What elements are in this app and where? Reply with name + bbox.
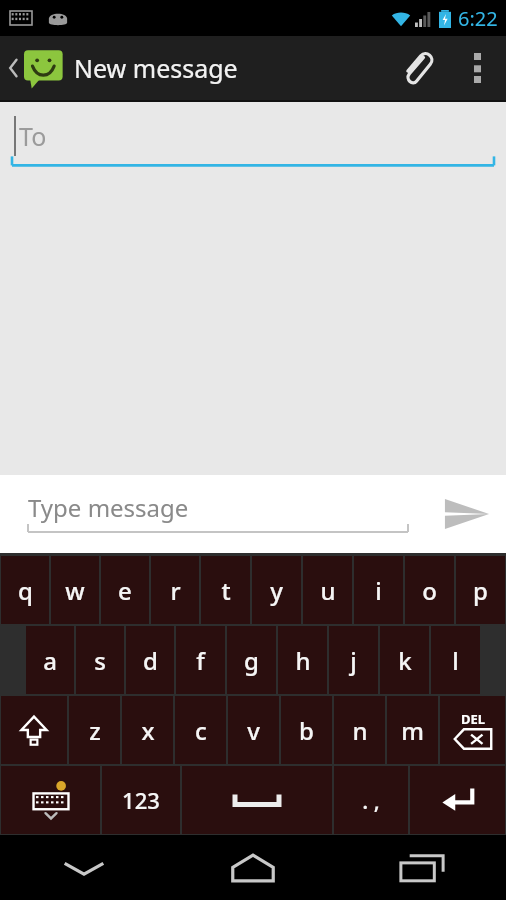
button[interactable]: i: [354, 556, 403, 624]
staticText: DEL: [461, 710, 486, 728]
staticText: k: [398, 644, 412, 677]
button[interactable]: Attach: [384, 36, 448, 100]
staticText: u: [320, 574, 336, 607]
staticText: Type message: [28, 491, 189, 524]
staticText: h: [295, 644, 311, 677]
staticText: To: [19, 119, 47, 153]
staticText: z: [89, 714, 101, 747]
button[interactable]: u: [303, 556, 352, 624]
staticText: n: [352, 714, 368, 747]
staticText: c: [195, 714, 207, 747]
staticText: b: [299, 714, 314, 747]
staticText: New message: [74, 51, 238, 85]
staticText: v: [247, 714, 260, 747]
button[interactable]: g: [227, 626, 276, 694]
button[interactable]: Space: [182, 766, 332, 834]
button[interactable]: s: [76, 626, 124, 694]
button[interactable]: t: [201, 556, 250, 624]
button[interactable]: b: [281, 696, 332, 764]
button[interactable]: n: [334, 696, 385, 764]
staticText: a: [43, 644, 57, 677]
button[interactable]: z: [69, 696, 120, 764]
button[interactable]: Shift: [1, 696, 67, 764]
button[interactable]: v: [228, 696, 279, 764]
button[interactable]: c: [175, 696, 226, 764]
staticText: x: [141, 714, 155, 747]
staticText: j: [350, 644, 357, 677]
button[interactable]: o: [405, 556, 454, 624]
staticText: o: [422, 574, 437, 607]
button[interactable]: 123: [102, 766, 180, 834]
button[interactable]: r: [151, 556, 199, 624]
staticText: g: [244, 644, 259, 677]
button[interactable]: Home: [168, 835, 337, 900]
staticText: t: [221, 574, 231, 607]
button[interactable]: Send: [428, 475, 506, 553]
button[interactable]: w: [51, 556, 99, 624]
staticText: w: [65, 574, 85, 607]
staticText: q: [18, 574, 33, 607]
button[interactable]: . ,: [334, 766, 408, 834]
staticText: s: [94, 644, 106, 677]
staticText: p: [473, 574, 488, 607]
button[interactable]: Type message: [28, 491, 408, 538]
staticText: y: [270, 574, 283, 607]
button[interactable]: y: [252, 556, 301, 624]
button[interactable]: d: [126, 626, 174, 694]
button[interactable]: p: [456, 556, 505, 624]
button[interactable]: Recent apps: [337, 835, 506, 900]
button[interactable]: q: [1, 556, 49, 624]
staticText: m: [401, 714, 424, 747]
staticText: l: [452, 644, 459, 677]
staticText: r: [170, 574, 181, 607]
staticText: 123: [122, 785, 160, 815]
button[interactable]: Enter: [410, 766, 505, 834]
staticText: f: [196, 644, 205, 677]
button[interactable]: f: [176, 626, 225, 694]
button[interactable]: k: [380, 626, 429, 694]
staticText: i: [375, 574, 382, 607]
button[interactable]: j: [329, 626, 378, 694]
button[interactable]: a: [26, 626, 74, 694]
button[interactable]: New message: [0, 36, 246, 100]
button[interactable]: h: [278, 626, 327, 694]
button[interactable]: l: [431, 626, 480, 694]
button[interactable]: To: [14, 116, 492, 156]
button[interactable]: e: [101, 556, 149, 624]
button[interactable]: Delete: [440, 696, 505, 764]
staticText: d: [143, 644, 158, 677]
button[interactable]: Hide keyboard: [0, 835, 168, 900]
staticText: e: [118, 574, 132, 607]
button[interactable]: m: [387, 696, 438, 764]
staticText: . ,: [362, 785, 380, 815]
button[interactable]: Switch keyboard: [1, 766, 100, 834]
button[interactable]: x: [122, 696, 173, 764]
button[interactable]: More options: [448, 36, 506, 100]
staticText: 6:22: [458, 5, 498, 32]
